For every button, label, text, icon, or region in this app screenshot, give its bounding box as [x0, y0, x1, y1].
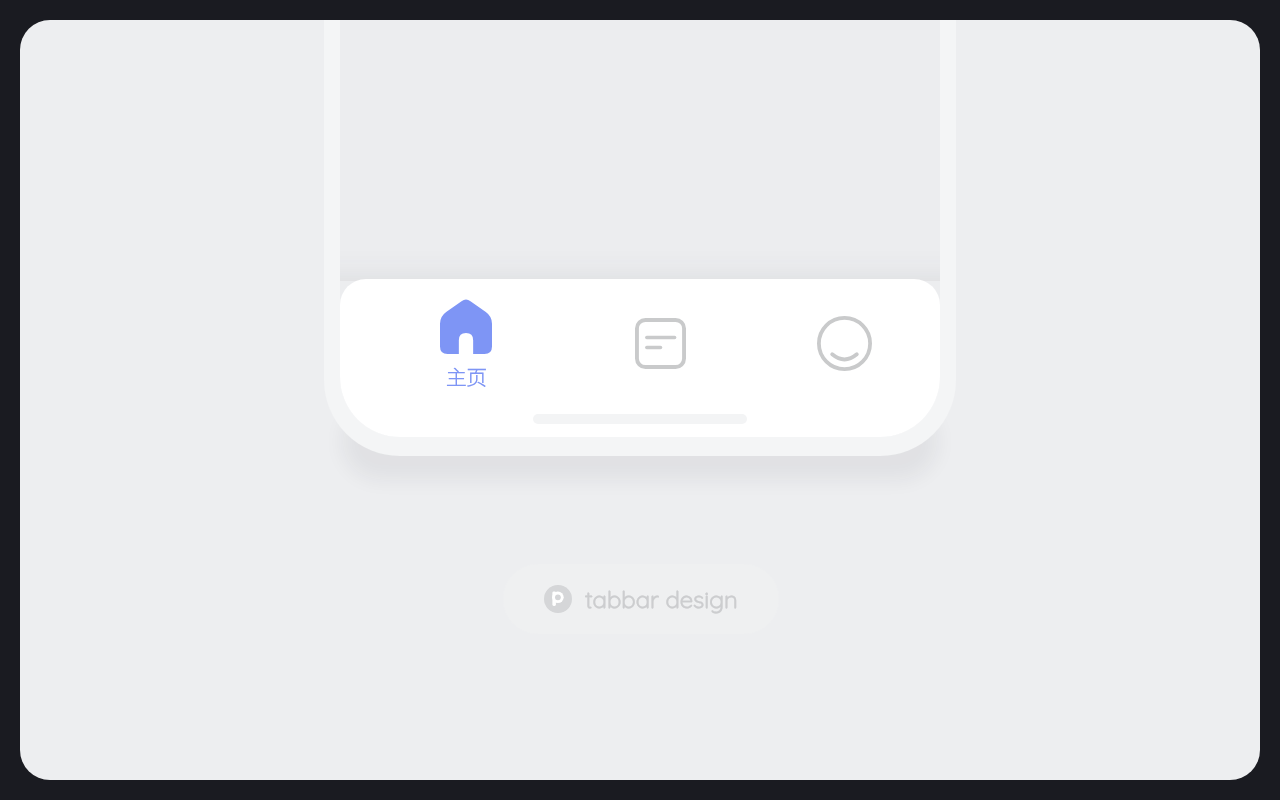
button[interactable]: Home — [394, 298, 538, 416]
button[interactable]: tabbar design — [503, 564, 779, 634]
staticText: tabbar design — [585, 584, 738, 614]
button[interactable]: Profile — [772, 298, 916, 416]
button[interactable]: Messages — [588, 298, 732, 416]
staticText: 主页 — [446, 361, 487, 391]
